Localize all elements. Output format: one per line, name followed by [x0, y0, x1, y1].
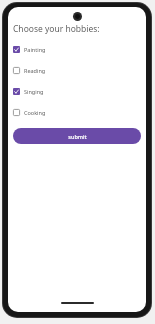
staticText: submit: [68, 133, 87, 140]
other: Checked: [13, 88, 20, 95]
staticText: Painting: [24, 46, 46, 53]
staticText: Choose your hobbies:: [13, 23, 100, 35]
button[interactable]: submit: [13, 128, 141, 144]
button[interactable]: Checked: [13, 46, 141, 53]
button[interactable]: Unchecked: [13, 67, 141, 74]
other: Unchecked: [13, 109, 20, 116]
button[interactable]: Unchecked: [13, 109, 141, 116]
other: Unchecked: [13, 67, 20, 74]
staticText: Cooking: [24, 109, 46, 116]
other: Checked: [13, 46, 20, 53]
staticText: Reading: [24, 67, 46, 74]
staticText: Singing: [24, 88, 44, 95]
button[interactable]: Checked: [13, 88, 141, 95]
